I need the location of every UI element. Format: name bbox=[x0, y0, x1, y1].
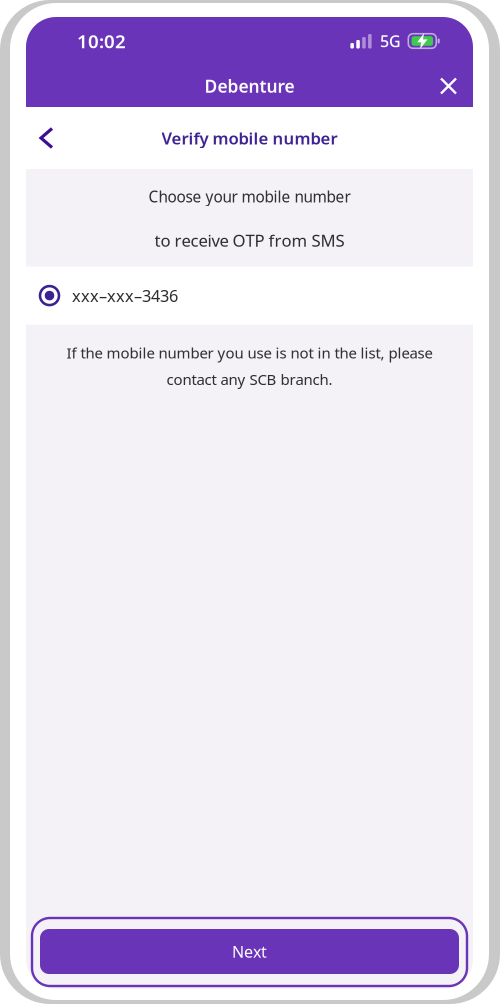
staticText: 10:02 bbox=[77, 29, 126, 53]
button[interactable]: xxx–xxx–3436 bbox=[26, 267, 473, 325]
staticText: to receive OTP from SMS bbox=[154, 229, 344, 252]
staticText: Choose your mobile number bbox=[148, 186, 350, 207]
staticText: contact any SCB branch. bbox=[166, 369, 332, 389]
button[interactable]: Next bbox=[40, 929, 459, 974]
staticText: Verify mobile number bbox=[161, 127, 337, 149]
staticText: If the mobile number you use is not in t… bbox=[66, 343, 432, 363]
staticText: xxx–xxx–3436 bbox=[72, 284, 178, 307]
staticText: Debenture bbox=[204, 74, 294, 97]
button[interactable]: Close bbox=[431, 68, 466, 103]
staticText: 5G bbox=[380, 30, 401, 52]
staticText: Next bbox=[232, 941, 267, 962]
button[interactable]: Back bbox=[30, 117, 63, 158]
